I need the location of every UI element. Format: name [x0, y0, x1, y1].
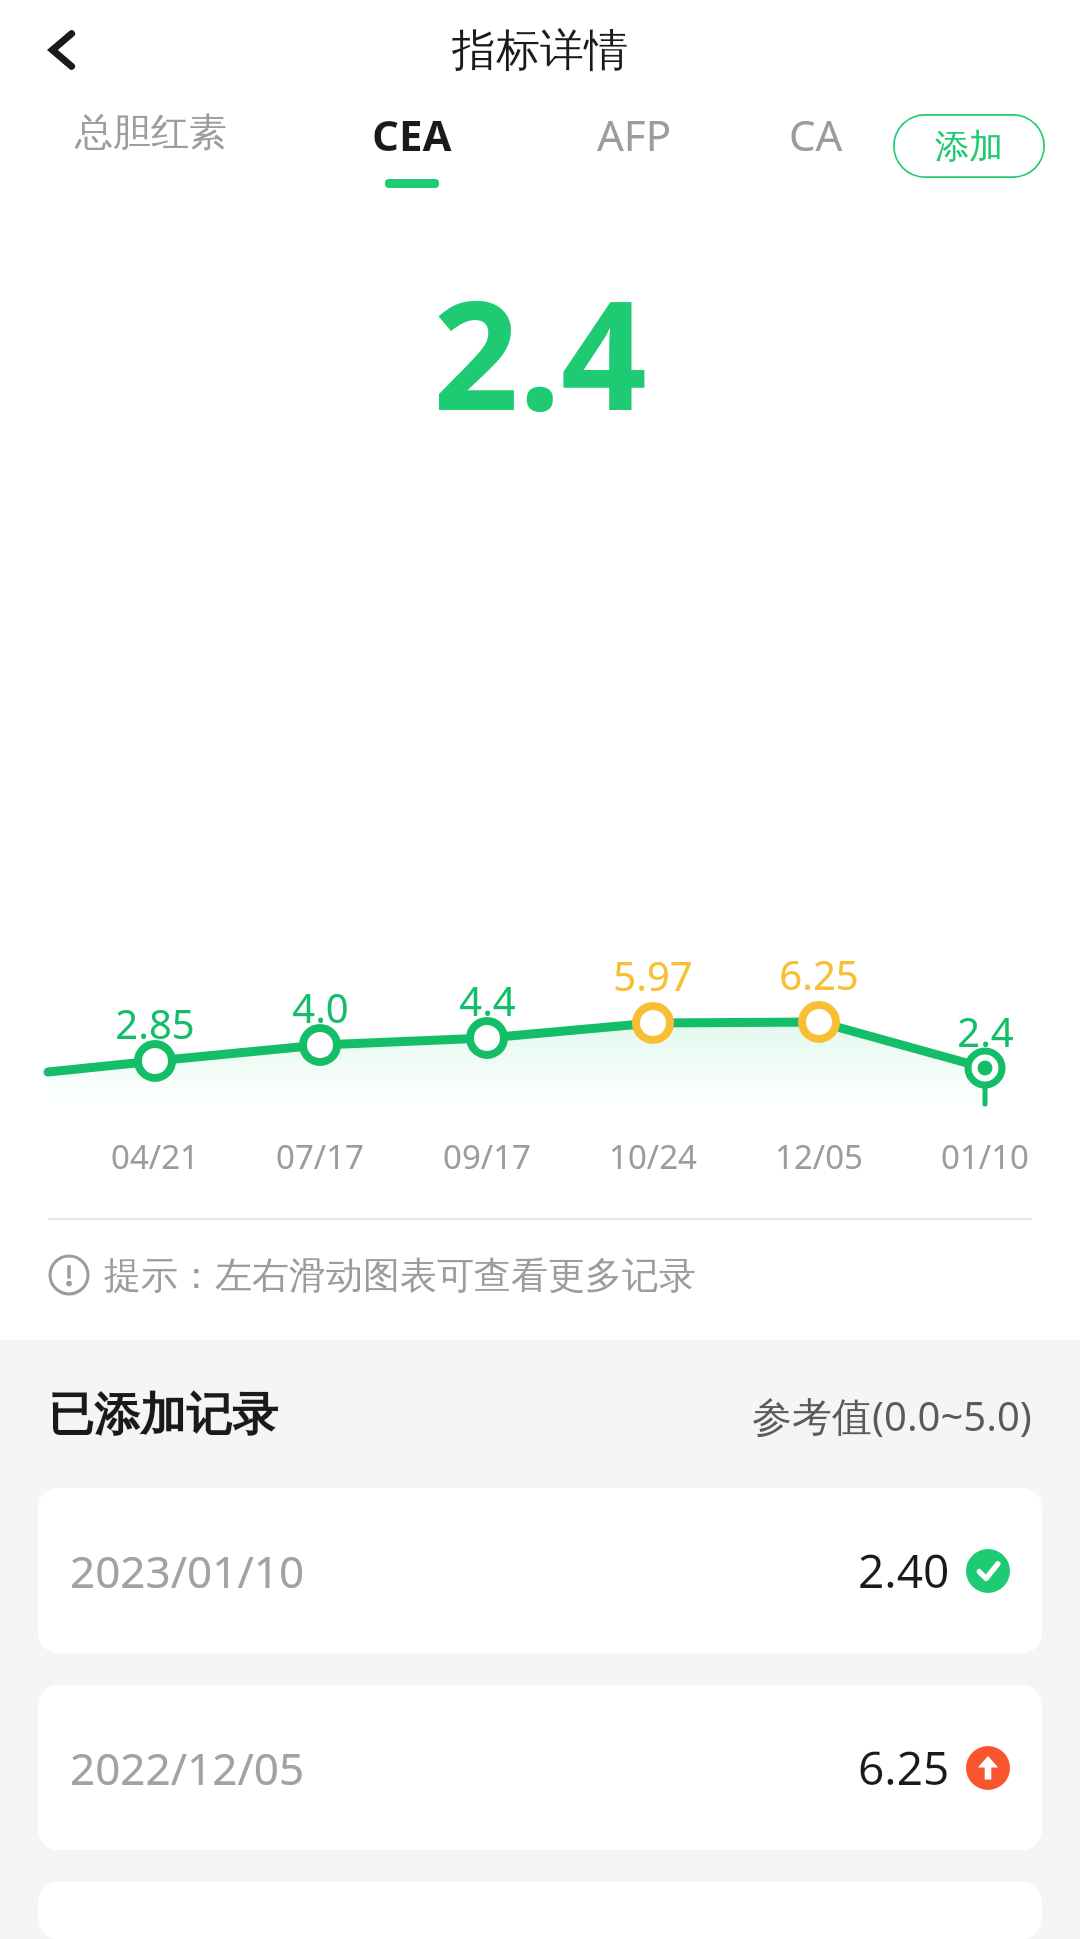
- staticText: AFP: [597, 106, 672, 163]
- staticText: 2.4: [433, 250, 647, 454]
- staticText: 01/10: [941, 1134, 1029, 1179]
- staticText: 已添加记录: [48, 1386, 278, 1444]
- staticText: 总胆红素: [75, 108, 227, 156]
- staticText: 04/21: [111, 1134, 199, 1179]
- staticText: 参考值(0.0~5.0): [752, 1388, 1032, 1443]
- button[interactable]: CEA: [372, 106, 452, 188]
- button[interactable]: 09/17: [402, 1134, 572, 1179]
- staticText: 10/24: [609, 1134, 697, 1179]
- staticText: CA: [789, 106, 843, 163]
- button[interactable]: 2022/12/05: [38, 1685, 1042, 1850]
- staticText: CEA: [372, 106, 452, 163]
- staticText: 添加: [935, 125, 1003, 168]
- staticText: 2.40: [858, 1539, 950, 1602]
- button[interactable]: 12/05: [734, 1134, 904, 1179]
- button[interactable]: 总胆红素: [75, 108, 227, 156]
- button[interactable]: 2023/01/10: [38, 1488, 1042, 1653]
- button[interactable]: Back: [22, 10, 102, 90]
- staticText: 指标详情: [452, 23, 628, 78]
- staticText: 2.4: [957, 1004, 1014, 1058]
- staticText: 12/05: [775, 1134, 863, 1179]
- button[interactable]: 添加: [893, 114, 1045, 178]
- staticText: 提示：左右滑动图表可查看更多记录: [104, 1252, 696, 1299]
- button[interactable]: AFP: [597, 106, 672, 163]
- staticText: 2022/12/05: [70, 1738, 305, 1798]
- staticText: 2.85: [115, 996, 195, 1050]
- button[interactable]: 01/10: [900, 1134, 1070, 1179]
- button[interactable]: CA: [789, 106, 843, 163]
- staticText: 4.0: [292, 980, 349, 1034]
- staticText: 5.97: [613, 948, 693, 1002]
- staticText: 4.4: [459, 973, 516, 1027]
- button[interactable]: 04/21: [70, 1134, 240, 1179]
- staticText: 6.25: [858, 1736, 950, 1799]
- button[interactable]: 07/17: [235, 1134, 405, 1179]
- staticText: 2023/01/10: [70, 1541, 305, 1601]
- staticText: 09/17: [443, 1134, 531, 1179]
- staticText: 07/17: [276, 1134, 364, 1179]
- button[interactable]: 10/24: [568, 1134, 738, 1179]
- staticText: 6.25: [779, 947, 859, 1001]
